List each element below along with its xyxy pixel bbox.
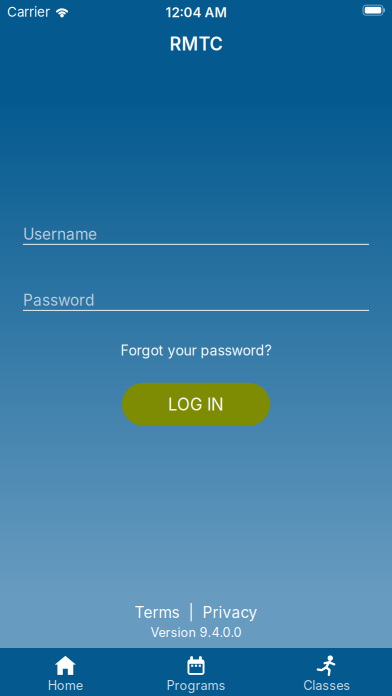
staticText: Classes xyxy=(303,678,350,693)
button[interactable]: LOG IN xyxy=(122,383,270,426)
button[interactable]: Home xyxy=(0,648,131,696)
staticText: Forgot your password? xyxy=(120,342,271,359)
staticText: Privacy xyxy=(202,603,257,622)
staticText: Home xyxy=(48,678,83,693)
staticText: RMTC xyxy=(169,33,222,55)
staticText: 12:04 AM xyxy=(165,4,226,20)
staticText: Carrier xyxy=(7,4,50,20)
staticText: LOG IN xyxy=(168,394,224,414)
staticText: Terms xyxy=(134,603,179,622)
staticText: Programs xyxy=(166,678,225,693)
staticText: | xyxy=(188,603,193,622)
button[interactable]: Forgot your password? xyxy=(120,342,271,359)
button[interactable]: Password text field xyxy=(0,291,392,311)
staticText: Version 9.4.0.0 xyxy=(150,625,241,640)
button[interactable]: Programs xyxy=(131,648,261,696)
staticText: Username xyxy=(23,225,97,243)
button[interactable]: Username text field xyxy=(0,225,392,245)
staticText: Password xyxy=(23,291,94,309)
button[interactable]: Terms xyxy=(134,603,179,622)
button[interactable]: Privacy xyxy=(202,603,257,622)
button[interactable]: Classes xyxy=(261,648,392,696)
